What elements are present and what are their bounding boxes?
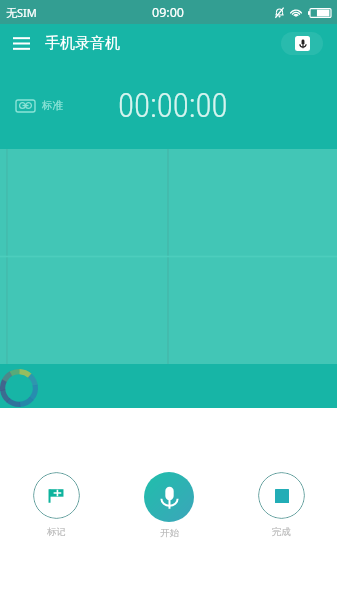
button[interactable]: Menu bbox=[5, 27, 37, 59]
button[interactable] bbox=[144, 472, 194, 522]
staticText: 标记 bbox=[47, 526, 66, 538]
staticText: 完成 bbox=[272, 526, 291, 538]
staticText: 00:00:00 bbox=[118, 86, 228, 125]
button[interactable]: Recordings bbox=[281, 32, 323, 55]
staticText: 手机录音机 bbox=[45, 34, 120, 53]
button[interactable] bbox=[33, 472, 80, 519]
staticText: 开始 bbox=[160, 527, 179, 539]
staticText: 无SIM bbox=[6, 5, 37, 20]
staticText: 09:00 bbox=[152, 4, 184, 21]
button[interactable] bbox=[258, 472, 305, 519]
staticText: 标准 bbox=[42, 99, 63, 112]
